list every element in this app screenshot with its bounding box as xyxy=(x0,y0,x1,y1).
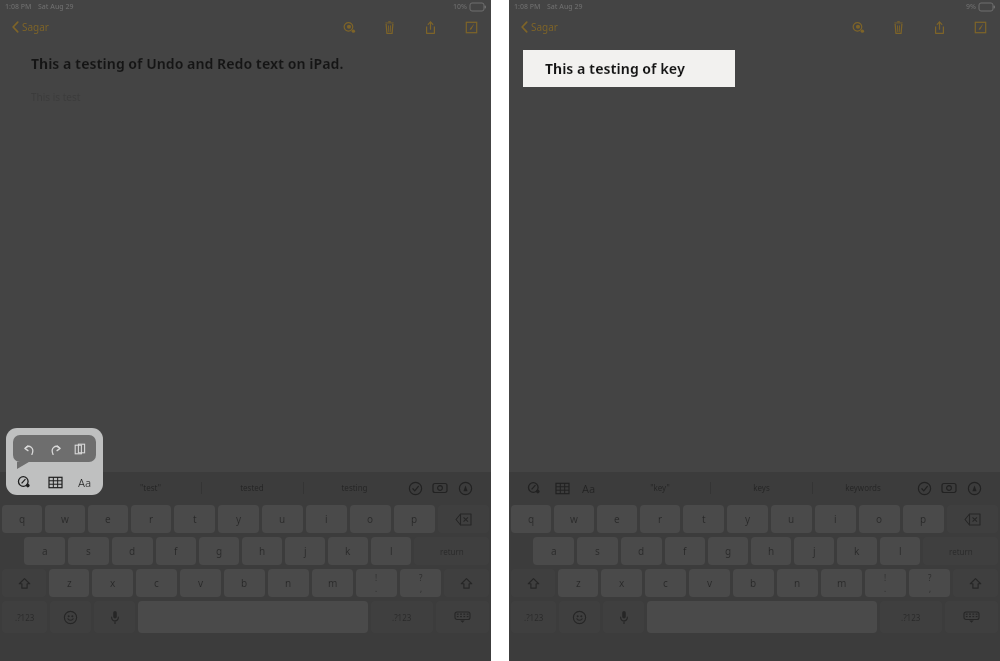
button[interactable]: Checklist xyxy=(914,478,934,498)
button[interactable]: Hide keyboard xyxy=(436,601,489,633)
button[interactable]: d xyxy=(621,537,662,565)
button[interactable]: d xyxy=(112,537,153,565)
button[interactable]: w xyxy=(45,505,85,533)
button[interactable]: Table xyxy=(552,478,572,498)
button[interactable]: Undo xyxy=(20,440,38,458)
button[interactable]: Emoji xyxy=(50,601,91,633)
button[interactable]: Shift xyxy=(511,569,555,597)
button[interactable]: m xyxy=(821,569,862,597)
button[interactable]: Camera xyxy=(430,478,450,498)
button[interactable]: "test" xyxy=(100,472,201,503)
button[interactable]: Dictation xyxy=(603,601,644,633)
button[interactable]: Markup xyxy=(848,17,868,37)
button[interactable]: e xyxy=(88,505,128,533)
button[interactable]: e xyxy=(597,505,637,533)
button[interactable]: Shift xyxy=(2,569,46,597)
button[interactable]: Shift xyxy=(953,569,998,597)
button[interactable]: Delete xyxy=(888,17,908,37)
button[interactable]: Share xyxy=(420,17,440,37)
button[interactable]: Sagar xyxy=(519,17,560,37)
button[interactable]: Sagar xyxy=(10,17,51,37)
button[interactable]: Hide keyboard xyxy=(945,601,998,633)
button[interactable]: Insert xyxy=(15,473,33,491)
button[interactable]: Backspace xyxy=(438,505,489,533)
button[interactable]: b xyxy=(224,569,265,597)
button[interactable]: Share xyxy=(929,17,949,37)
button[interactable]: Aa xyxy=(580,479,598,498)
button[interactable]: Dictation xyxy=(94,601,135,633)
button[interactable]: Markup xyxy=(339,17,359,37)
button[interactable]: g xyxy=(199,537,239,565)
button[interactable]: b xyxy=(733,569,774,597)
button[interactable]: q xyxy=(2,505,42,533)
button[interactable]: m xyxy=(312,569,353,597)
button[interactable]: Backspace xyxy=(947,505,998,533)
button[interactable]: p xyxy=(394,505,435,533)
button[interactable]: Camera xyxy=(939,478,959,498)
button[interactable]: q xyxy=(511,505,551,533)
button[interactable]: Table xyxy=(46,473,64,491)
button[interactable]: p xyxy=(903,505,944,533)
button[interactable]: Insert xyxy=(524,478,544,498)
button[interactable]: Paste xyxy=(71,440,89,458)
button[interactable]: Markup xyxy=(964,478,984,498)
button[interactable]: Compose xyxy=(461,17,481,37)
button[interactable]: Delete xyxy=(379,17,399,37)
button[interactable]: Checklist xyxy=(405,478,425,498)
button[interactable]: w xyxy=(554,505,594,533)
button[interactable]: Emoji xyxy=(559,601,600,633)
button[interactable]: Shift xyxy=(444,569,489,597)
button[interactable]: g xyxy=(708,537,748,565)
button[interactable]: Aa xyxy=(76,475,94,490)
button[interactable]: Compose xyxy=(970,17,990,37)
